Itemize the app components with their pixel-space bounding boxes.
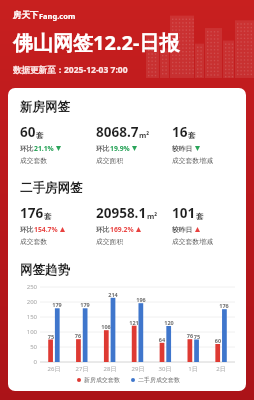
staticText: 成交面积 [96, 237, 124, 246]
staticText: 较昨日 [172, 144, 193, 153]
staticText: 成交套数增减 [172, 156, 213, 165]
staticText: 27日 [71, 365, 93, 373]
staticText: 50 [20, 343, 37, 351]
staticText: 套 [36, 131, 44, 140]
staticText: 2日 [210, 365, 232, 373]
staticText: 环比 [96, 225, 110, 234]
staticText: 176 [214, 302, 234, 309]
button[interactable]: 20958.1 [96, 204, 172, 246]
staticText: 8068.7 [96, 123, 139, 141]
button[interactable]: 8068.7 [96, 123, 172, 165]
staticText: 64 [152, 336, 172, 343]
staticText: 0 [20, 358, 37, 366]
staticText: 101 [172, 204, 196, 222]
staticText: 数据更新至：2025-12-03 7:00 [13, 64, 128, 76]
staticText: 新房网签 [20, 99, 70, 115]
staticText: 30日 [154, 365, 176, 373]
staticText: 新房成交套数 [84, 376, 120, 384]
staticText: 75 [187, 333, 207, 340]
staticText: 套 [188, 131, 196, 140]
staticText: 214 [103, 291, 123, 298]
staticText: 179 [47, 301, 67, 308]
staticText: 较昨日 [172, 225, 193, 234]
staticText: 169.2% [110, 225, 134, 234]
staticText: 29日 [127, 365, 149, 373]
staticText: 成交套数 [20, 237, 48, 246]
staticText: 200 [20, 298, 37, 306]
staticText: 60 [208, 337, 228, 344]
staticText: 套 [196, 212, 204, 221]
staticText: 成交面积 [96, 156, 124, 165]
staticText: 154.7% [34, 225, 58, 234]
staticText: 20958.1 [96, 204, 147, 222]
staticText: 成交套数增减 [172, 237, 213, 246]
staticText: 佛山网签12.2-日报 [13, 29, 180, 56]
staticText: 二手房网签 [20, 180, 83, 196]
staticText: 176 [20, 204, 44, 222]
staticText: 150 [20, 313, 37, 321]
staticText: 26日 [43, 365, 65, 373]
button[interactable]: 176 [20, 204, 96, 246]
staticText: 套 [44, 212, 52, 221]
staticText: 75 [41, 333, 61, 340]
staticText: 250 [20, 283, 37, 291]
staticText: 房天下 [13, 10, 39, 21]
staticText: 100 [20, 328, 37, 336]
staticText: 16 [172, 123, 188, 141]
staticText: 成交套数 [20, 156, 48, 165]
staticText: 28日 [99, 365, 121, 373]
button[interactable]: 二手房成交套数 [131, 376, 180, 384]
staticText: 环比 [20, 144, 34, 153]
staticText: 196 [131, 296, 151, 303]
button[interactable]: 101 [172, 204, 237, 246]
button[interactable]: 16 [172, 123, 237, 165]
staticText: 环比 [20, 225, 34, 234]
staticText: 120 [159, 319, 179, 326]
staticText: 1日 [182, 365, 204, 373]
staticText: 121 [124, 319, 144, 326]
staticText: 二手房成交套数 [138, 376, 180, 384]
staticText: 76 [180, 332, 200, 339]
staticText: 网签趋势 [20, 262, 70, 278]
button[interactable]: 新房成交套数 [77, 376, 120, 384]
staticText: 76 [68, 332, 88, 339]
button[interactable]: 60 [20, 123, 96, 165]
staticText: 106 [96, 323, 116, 330]
staticText: 179 [75, 301, 95, 308]
button[interactable]: 房天下 [13, 10, 76, 21]
staticText: m² [139, 130, 150, 140]
staticText: 21.1% [34, 144, 54, 153]
staticText: 60 [20, 123, 36, 141]
staticText: m² [147, 211, 158, 221]
staticText: Fang.com [39, 11, 76, 21]
staticText: 19.9% [110, 144, 130, 153]
staticText: 环比 [96, 144, 110, 153]
